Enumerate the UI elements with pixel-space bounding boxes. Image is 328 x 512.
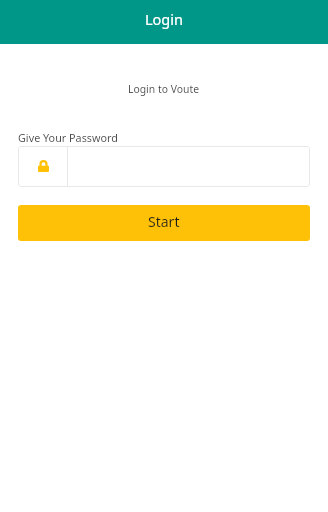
staticText: Start	[148, 212, 180, 231]
other: Password locked	[38, 160, 49, 172]
button[interactable]: Start	[18, 205, 310, 241]
staticText: Give Your Password	[18, 130, 118, 145]
button[interactable]: Password input	[18, 146, 310, 187]
staticText: Login to Voute	[128, 82, 200, 96]
staticText: Login	[145, 9, 183, 29]
